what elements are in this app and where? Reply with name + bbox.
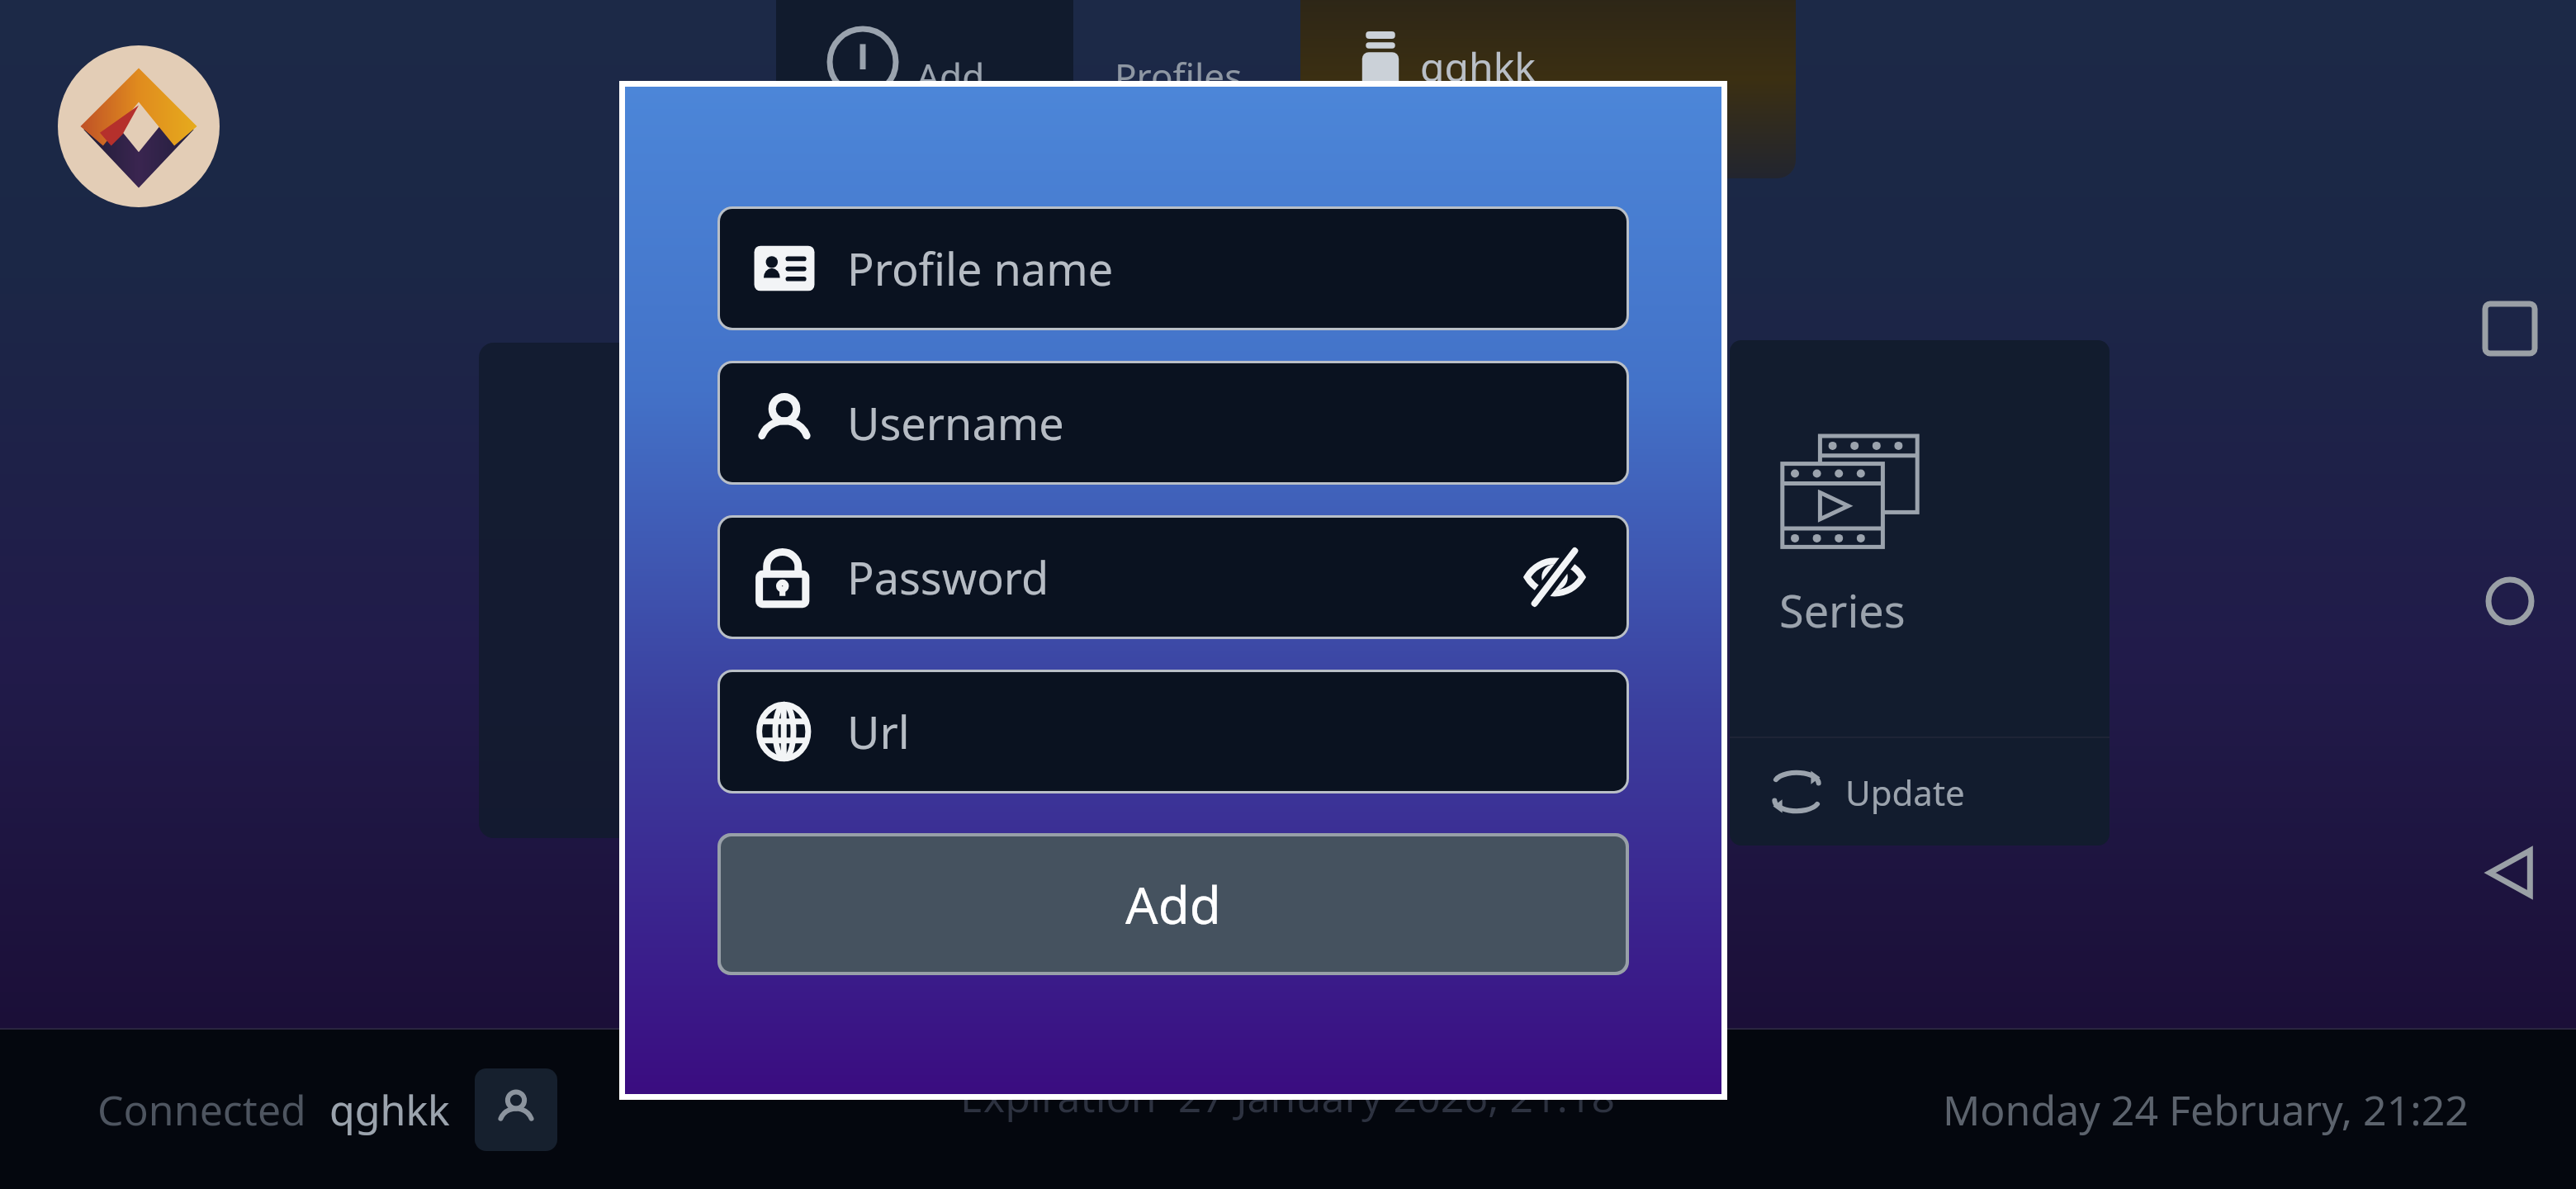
staticText: Username xyxy=(847,392,1064,453)
staticText: Url xyxy=(847,701,910,762)
staticText: Expiration 27 January 2026, 21:18 xyxy=(960,1068,1616,1125)
button[interactable]: Add xyxy=(721,836,1626,972)
button[interactable]: Account xyxy=(475,1068,557,1151)
staticText: Monday 24 February, 21:22 xyxy=(1943,1082,2469,1138)
staticText: Add xyxy=(1125,869,1221,939)
button[interactable]: Username xyxy=(720,363,1627,482)
button[interactable]: Show password xyxy=(1509,532,1600,623)
staticText: Connected xyxy=(97,1082,306,1138)
staticText: Series xyxy=(1779,580,1906,641)
staticText: Update xyxy=(1845,769,1965,816)
button[interactable]: Profile name xyxy=(720,209,1627,328)
staticText: Add xyxy=(916,51,985,101)
staticText: Password xyxy=(847,547,1049,608)
staticText: Profile name xyxy=(847,238,1114,299)
button[interactable]: Url xyxy=(720,672,1627,791)
button[interactable] xyxy=(1300,0,1796,178)
staticText: qghkk xyxy=(1420,40,1536,93)
button[interactable]: Back xyxy=(2484,846,2536,899)
staticText: qghkk xyxy=(329,1082,450,1138)
button[interactable]: Series xyxy=(1730,340,2110,846)
staticText: Profiles xyxy=(1115,51,1243,101)
button[interactable] xyxy=(776,0,1073,182)
button[interactable]: Password xyxy=(720,518,1627,637)
button[interactable]: App logo xyxy=(58,45,220,207)
button[interactable]: Recents xyxy=(2485,304,2535,353)
button[interactable]: Home xyxy=(2485,576,2535,626)
button[interactable]: Connected xyxy=(97,1068,557,1151)
button[interactable]: Update xyxy=(1730,738,2110,846)
